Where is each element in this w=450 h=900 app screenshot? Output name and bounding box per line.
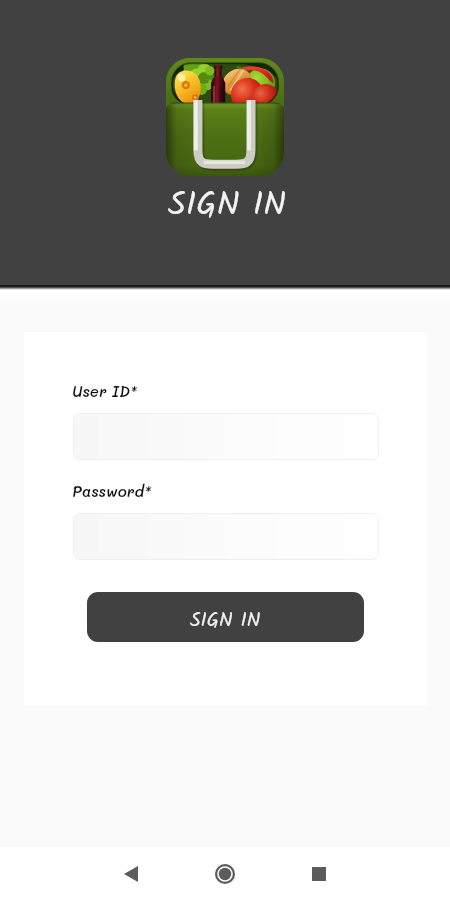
button[interactable]: SIGN IN [87,592,364,642]
button[interactable] [73,413,379,460]
staticText: SIGN IN [190,605,261,637]
staticText: SIGN IN [168,179,286,232]
staticText: Password* [72,481,152,500]
staticText: User ID* [72,381,138,400]
button[interactable]: Home [178,847,272,900]
button[interactable] [73,513,379,560]
button[interactable]: Recent apps [272,847,366,900]
button[interactable]: Back [84,847,178,900]
